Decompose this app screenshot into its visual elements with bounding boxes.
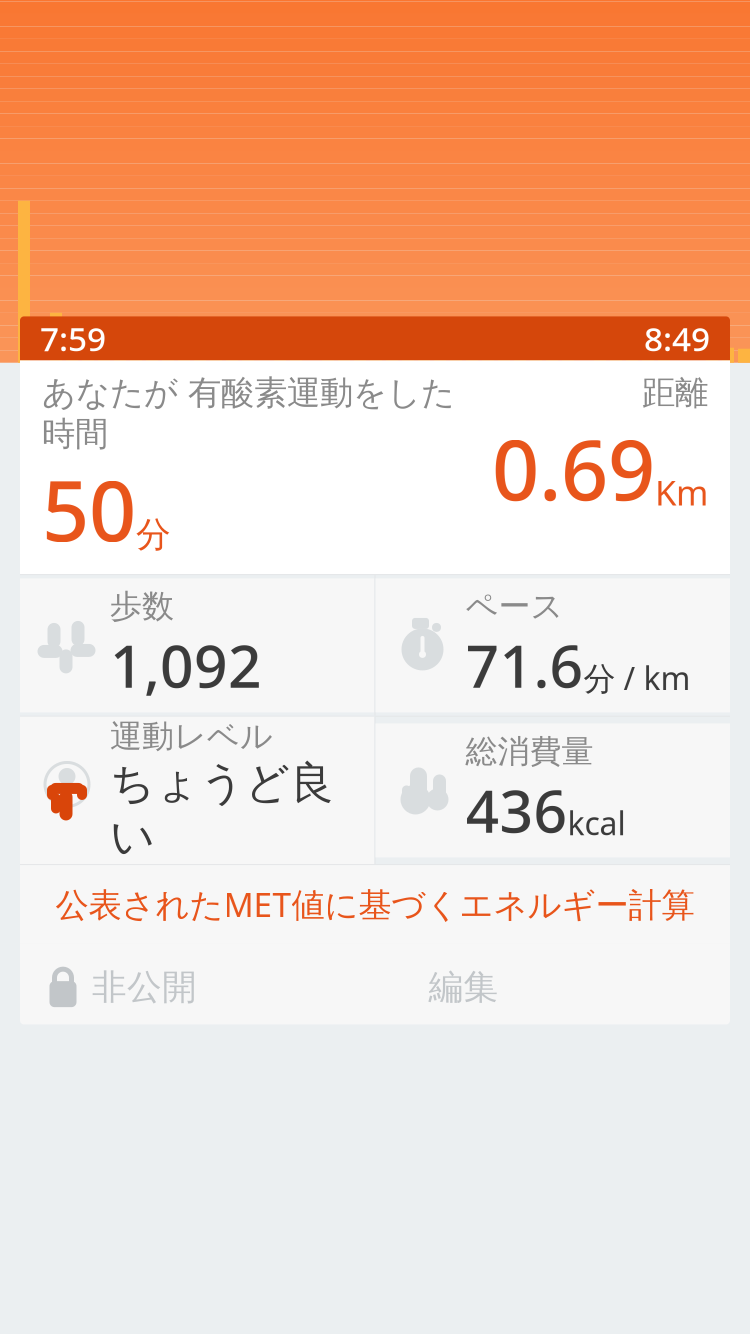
staticText: 編集 (428, 966, 498, 1008)
staticText: ペース (465, 587, 563, 626)
staticText: kcal (567, 802, 625, 844)
button[interactable]: 公表されたMET値に基づくエネルギー計算 (20, 865, 730, 943)
staticText: 歩数 (110, 587, 174, 626)
button[interactable]: ペース (375, 578, 730, 712)
staticText: 8:49 (644, 316, 710, 361)
staticText: 7:59 (40, 316, 106, 361)
staticText: 1,092 (110, 626, 262, 704)
staticText: 距離 (642, 372, 708, 413)
staticText: あなたが 有酸素運動をした 時間 (42, 372, 455, 454)
staticText: 非公開 (92, 966, 197, 1008)
button[interactable]: 非公開 (20, 943, 197, 1031)
button[interactable]: 総消費量 (375, 723, 730, 857)
staticText: 436 (465, 771, 567, 849)
button[interactable]: 運動レベル (20, 717, 374, 864)
staticText: ちょうど良い (110, 756, 334, 864)
button[interactable]: 歩数 (20, 578, 374, 712)
staticText: 公表されたMET値に基づくエネルギー計算 (55, 882, 694, 926)
staticText: 71.6 (465, 626, 583, 704)
staticText: 50 (42, 454, 136, 564)
staticText: 分 / km (583, 656, 690, 699)
staticText: 分 (136, 513, 171, 556)
button[interactable]: 編集 (383, 943, 543, 1031)
staticText: 運動レベル (110, 717, 273, 756)
staticText: 総消費量 (465, 732, 593, 771)
staticText: 0.69 (492, 413, 655, 523)
staticText: Km (655, 469, 708, 515)
